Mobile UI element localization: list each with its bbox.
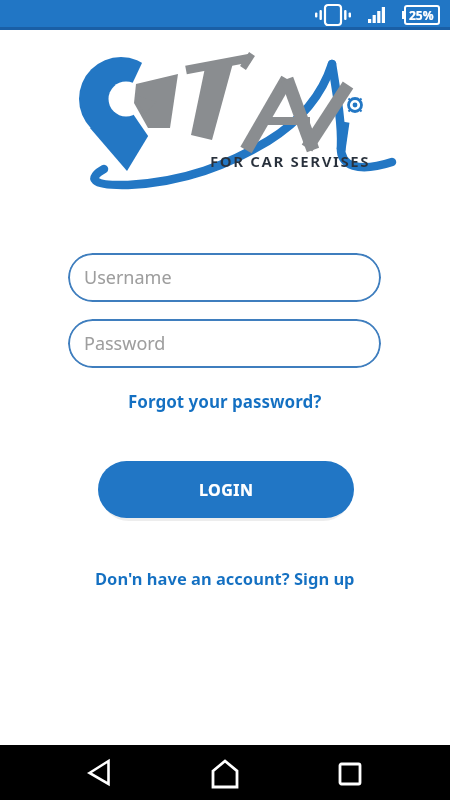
button[interactable] [201, 748, 249, 796]
button[interactable]: Password [68, 319, 381, 368]
staticText: Forgot your password? [128, 390, 322, 413]
button[interactable]: Username [68, 253, 381, 302]
staticText: 25% [409, 7, 434, 23]
button[interactable] [326, 748, 374, 796]
button[interactable] [75, 749, 123, 797]
staticText: LOGIN [199, 479, 254, 501]
button[interactable]: Forgot your password? [128, 390, 322, 413]
staticText: FOR CAR SERVISES [210, 151, 371, 171]
staticText: Password [84, 331, 166, 356]
staticText: Don'n have an account? Sign up [95, 567, 355, 589]
staticText: Username [84, 265, 172, 290]
button[interactable]: Don'n have an account? Sign up [95, 567, 355, 589]
button[interactable]: LOGIN [98, 461, 354, 518]
